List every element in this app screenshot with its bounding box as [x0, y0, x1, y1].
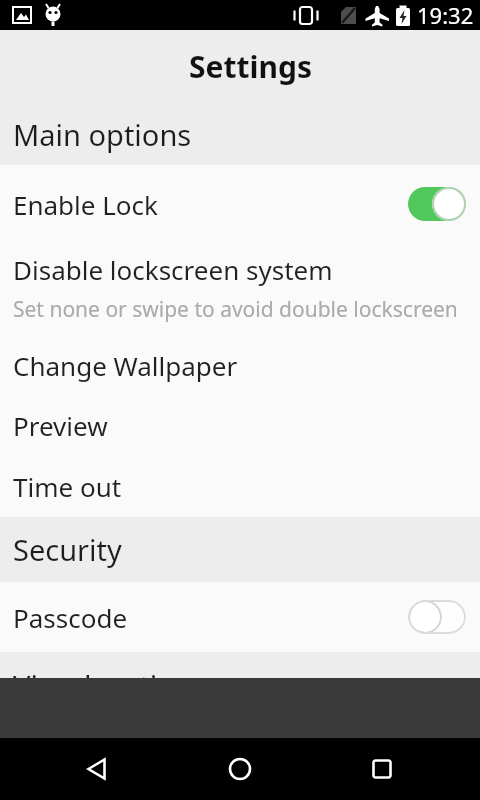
- button[interactable]: [408, 187, 466, 221]
- staticText: Change Wallpaper: [13, 348, 466, 383]
- staticText: Passcode: [13, 600, 408, 635]
- staticText: View location: [13, 666, 193, 705]
- button[interactable]: [73, 745, 121, 793]
- staticText: 19:32: [417, 0, 474, 30]
- button[interactable]: Passcode: [0, 582, 480, 652]
- staticText: Security: [13, 530, 122, 569]
- staticText: Disable lockscreen system: [13, 252, 333, 287]
- staticText: Set none or swipe to avoid double locksc…: [13, 295, 458, 324]
- button[interactable]: Time out: [0, 455, 480, 517]
- staticText: Time out: [13, 469, 466, 504]
- button[interactable]: [216, 745, 264, 793]
- button[interactable]: Enable Lock: [0, 165, 480, 243]
- staticText: Settings: [189, 46, 312, 87]
- button[interactable]: [358, 745, 406, 793]
- button[interactable]: Disable lockscreen system: [0, 243, 480, 335]
- button[interactable]: Preview: [0, 395, 480, 455]
- staticText: Preview: [13, 408, 466, 443]
- button[interactable]: Change Wallpaper: [0, 335, 480, 395]
- button[interactable]: [408, 600, 466, 634]
- staticText: Main options: [13, 115, 192, 154]
- staticText: Enable Lock: [13, 187, 408, 222]
